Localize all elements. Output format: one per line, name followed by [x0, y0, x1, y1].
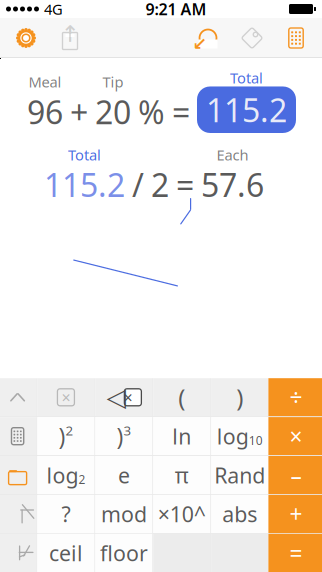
staticText: ◁	[106, 383, 125, 412]
staticText: Meal	[28, 72, 61, 91]
staticText: ↙	[192, 34, 207, 54]
staticText: )	[58, 421, 65, 451]
staticText: log	[217, 422, 249, 450]
staticText: +	[289, 499, 302, 529]
staticText: ×	[289, 421, 302, 451]
button[interactable]: Close parenthesis	[211, 378, 268, 416]
button[interactable]: Delete	[95, 378, 152, 416]
button[interactable]: pi	[153, 456, 210, 494]
staticText: 57.6	[201, 163, 264, 206]
staticText: 2	[151, 163, 169, 206]
staticText: Each	[216, 145, 248, 164]
staticText: abs	[222, 500, 257, 528]
staticText: 3	[123, 422, 131, 439]
staticText: =	[289, 538, 302, 568]
staticText: =	[172, 90, 190, 133]
button[interactable]: Divide	[268, 378, 322, 416]
staticText: Total	[230, 68, 263, 87]
staticText: )	[116, 421, 123, 451]
staticText: 9:21 AM	[145, 0, 206, 20]
staticText: ln	[172, 422, 191, 450]
staticText: mod	[101, 500, 147, 528]
button[interactable]: Multiply	[268, 417, 322, 455]
staticText: ?	[61, 500, 70, 528]
staticText: ×10^	[158, 500, 206, 528]
button[interactable]: Cubed	[95, 417, 152, 455]
button[interactable]: Hide keyboard	[0, 378, 37, 416]
staticText: ◁	[106, 383, 125, 412]
button[interactable]: Graph	[0, 534, 37, 572]
staticText: ↑	[60, 21, 79, 47]
staticText: π	[175, 461, 189, 489]
button[interactable]: Settings	[4, 19, 48, 57]
staticText: ceil	[49, 539, 83, 567]
button[interactable]: Files	[0, 456, 37, 494]
staticText: 2	[65, 422, 73, 439]
button[interactable]: Share	[48, 19, 92, 57]
button[interactable]: Question	[37, 495, 94, 533]
button[interactable]: Log base 2	[37, 456, 94, 494]
button[interactable]: ceil	[37, 534, 94, 572]
button[interactable]: Calculator	[0, 417, 37, 455]
staticText: /	[132, 163, 144, 206]
button[interactable]: Minus	[268, 456, 322, 494]
staticText: 96	[27, 90, 63, 133]
button[interactable]: Squared	[37, 417, 94, 455]
staticText: e	[118, 461, 130, 489]
staticText: 10	[249, 432, 263, 448]
button[interactable]: Clear	[37, 378, 94, 416]
staticText: (	[178, 381, 185, 413]
staticText: Total	[68, 145, 101, 164]
staticText: floor	[100, 539, 148, 567]
staticText: ×	[123, 387, 132, 408]
staticText: Tip	[102, 72, 123, 91]
staticText: Rand	[214, 461, 265, 489]
staticText: 115.2	[44, 163, 125, 206]
button[interactable]: Undo	[186, 19, 230, 57]
button[interactable]: e	[95, 456, 152, 494]
button[interactable]: Tag	[230, 19, 274, 57]
button[interactable]: Geometry	[0, 495, 37, 533]
button[interactable]: Open parenthesis	[153, 378, 210, 416]
staticText: +	[70, 90, 88, 133]
button[interactable]: Log base 10	[211, 417, 268, 455]
staticText: =	[176, 163, 194, 206]
staticText: 20	[95, 90, 131, 133]
button[interactable]: Equals	[268, 534, 322, 572]
button[interactable]: Absolute value	[211, 495, 268, 533]
button[interactable]: Plus	[268, 495, 322, 533]
staticText: 2	[78, 471, 85, 487]
staticText: 115.2	[206, 88, 287, 131]
staticText: 4G	[44, 0, 63, 19]
button[interactable]: Natural log	[153, 417, 210, 455]
button[interactable]: mod	[95, 495, 152, 533]
staticText: ÷	[289, 382, 302, 412]
button[interactable]: Rand	[211, 456, 268, 494]
staticText: %	[138, 90, 165, 133]
staticText: ×	[61, 387, 70, 408]
staticText: –	[290, 460, 301, 490]
button[interactable]: Calculator	[274, 19, 318, 57]
button[interactable]: Times ten to the power	[153, 495, 210, 533]
staticText: )	[236, 381, 243, 413]
staticText: log	[46, 461, 78, 489]
button[interactable]: floor	[95, 534, 152, 572]
